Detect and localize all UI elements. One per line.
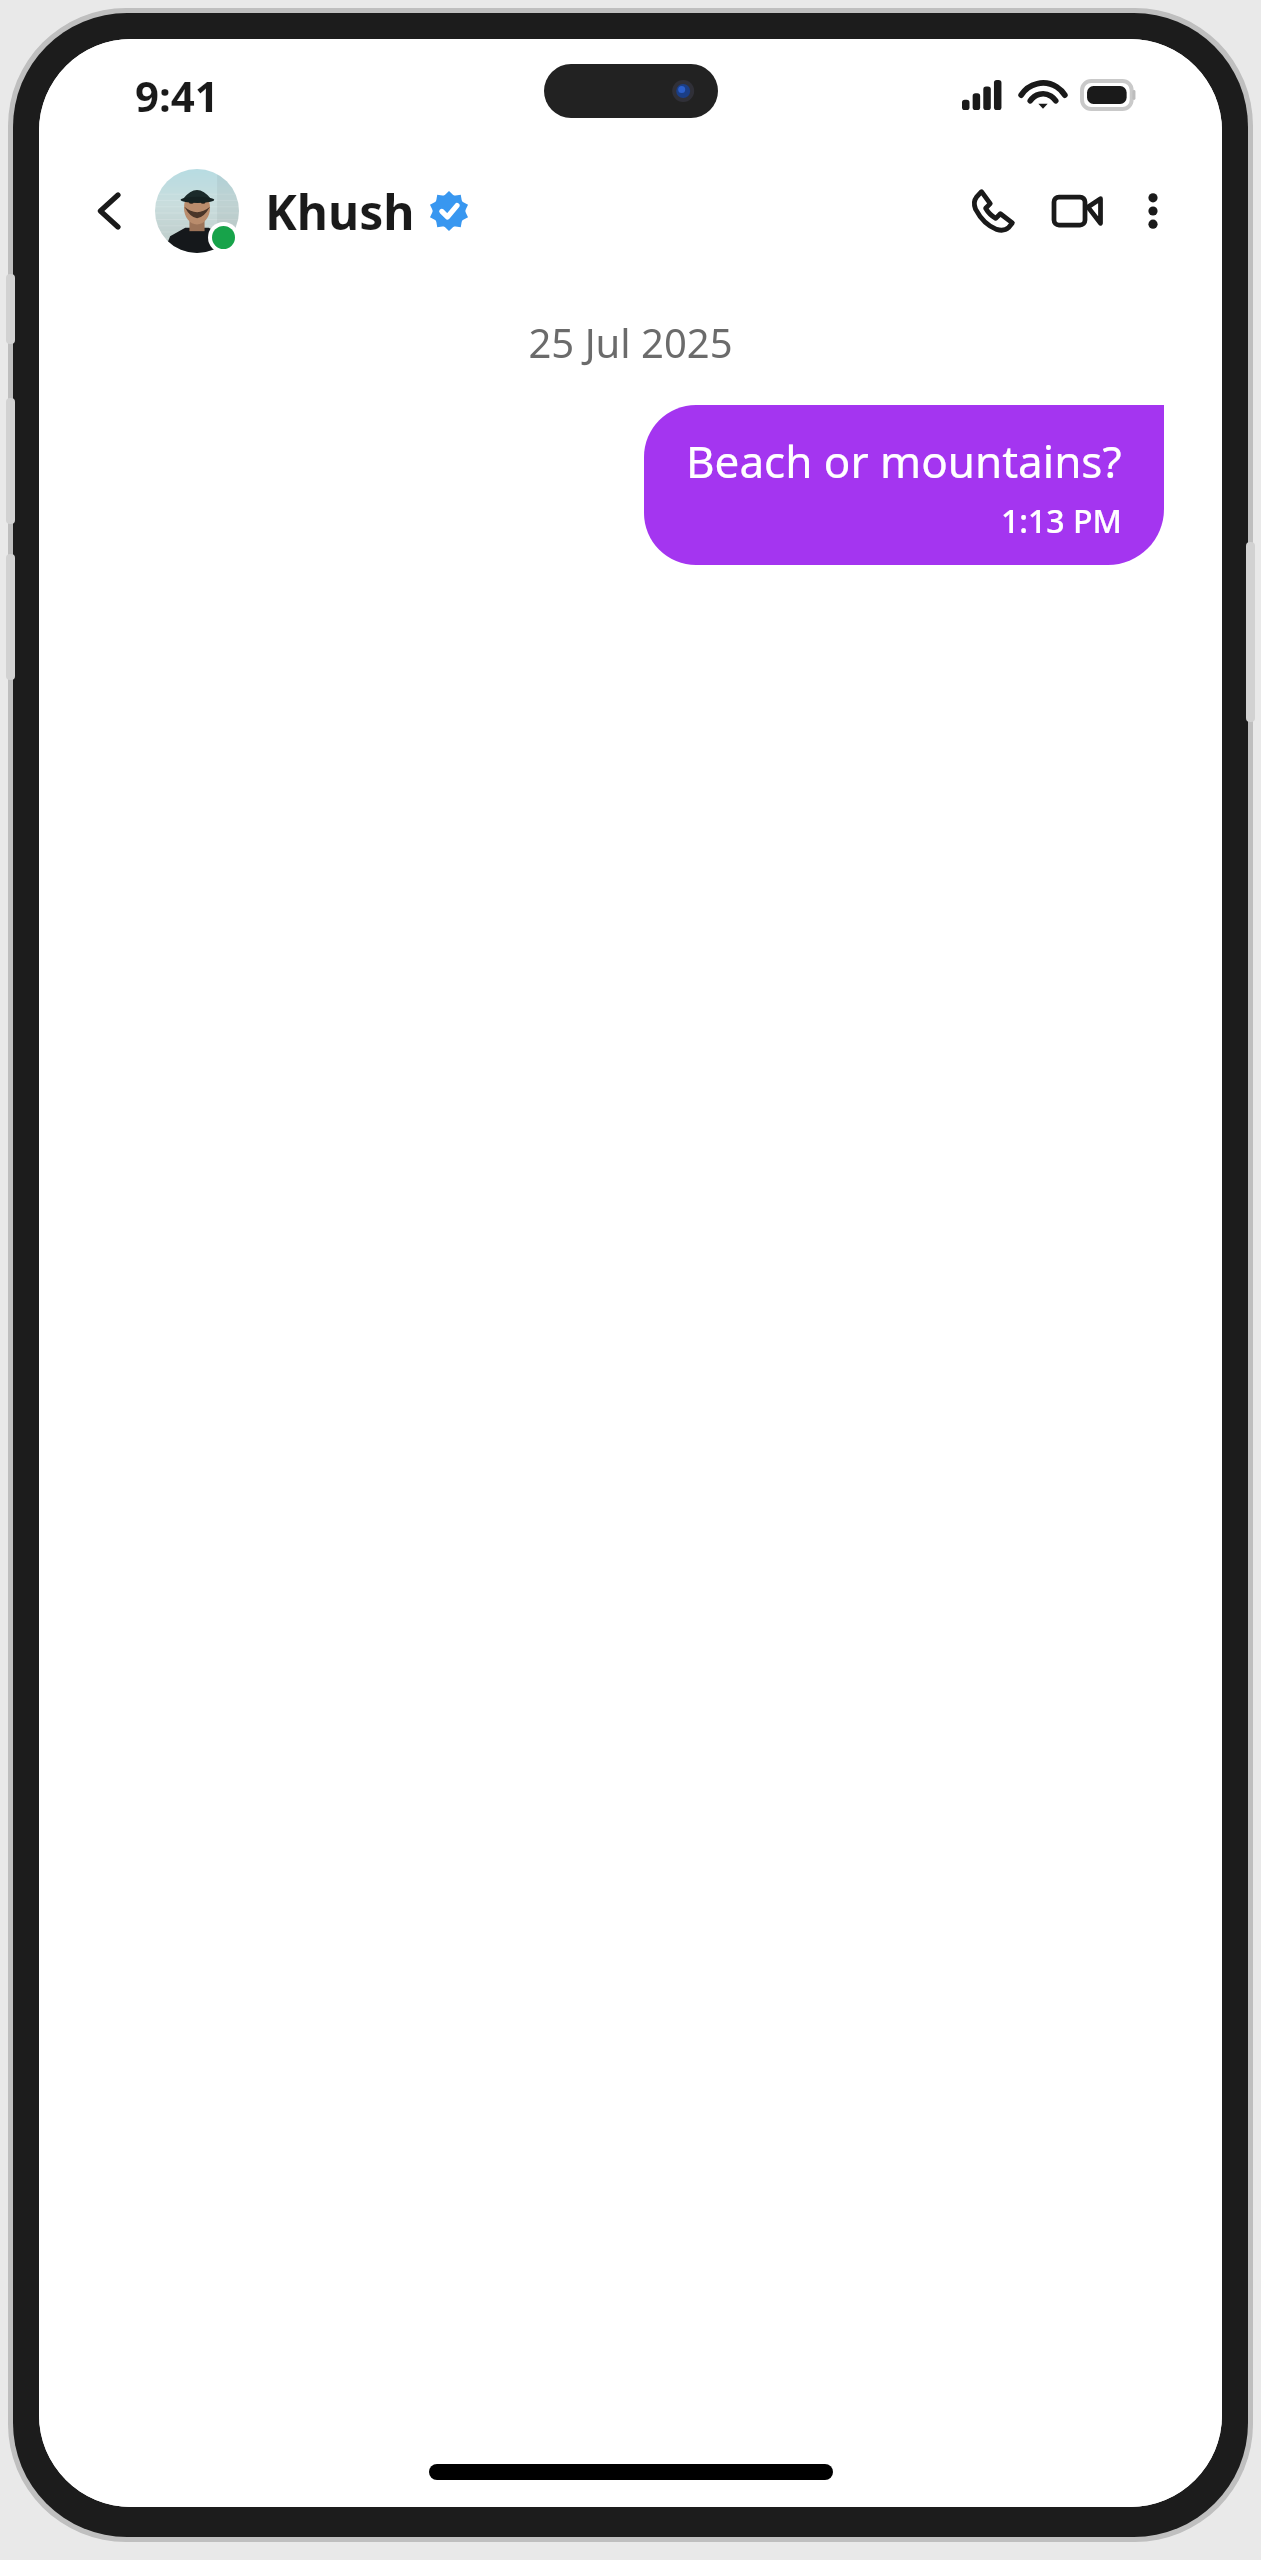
staticText: 9:41: [135, 67, 219, 124]
button[interactable]: Voice call: [954, 172, 1032, 250]
button[interactable]: Video call: [1038, 172, 1116, 250]
button[interactable]: Back: [73, 174, 147, 248]
staticText: Beach or mountains?: [686, 431, 1122, 491]
staticText: 1:13 PM: [1001, 499, 1122, 543]
button[interactable]: Beach or mountains?: [644, 405, 1164, 565]
staticText: Khush: [265, 179, 415, 244]
button[interactable]: More options: [1122, 180, 1184, 242]
staticText: 25 Jul 2025: [528, 315, 733, 369]
button[interactable]: Khush: [155, 169, 954, 253]
